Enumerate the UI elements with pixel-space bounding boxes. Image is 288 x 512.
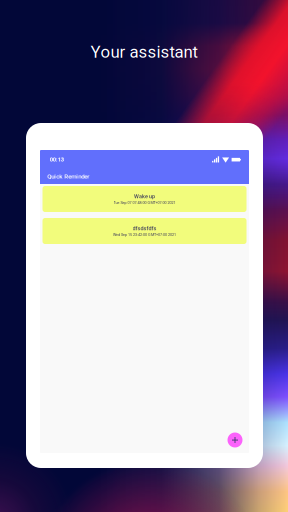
staticText: Wed Sep 15 23:42:00 GMT+07:00 2021: [113, 232, 176, 237]
staticText: Your assistant: [90, 42, 197, 62]
staticText: 00:13: [50, 156, 64, 163]
staticText: Tue Sep 07 07:48:00 GMT+07:00 2021: [113, 200, 175, 205]
staticText: dfsdsfdfs: [132, 225, 156, 231]
staticText: Wake up: [134, 193, 155, 199]
button[interactable]: Add reminder: [221, 427, 249, 453]
button[interactable]: dfsdsfdfs: [42, 218, 246, 244]
button[interactable]: Wake up: [42, 186, 246, 212]
staticText: Quick Reminder: [47, 173, 89, 180]
